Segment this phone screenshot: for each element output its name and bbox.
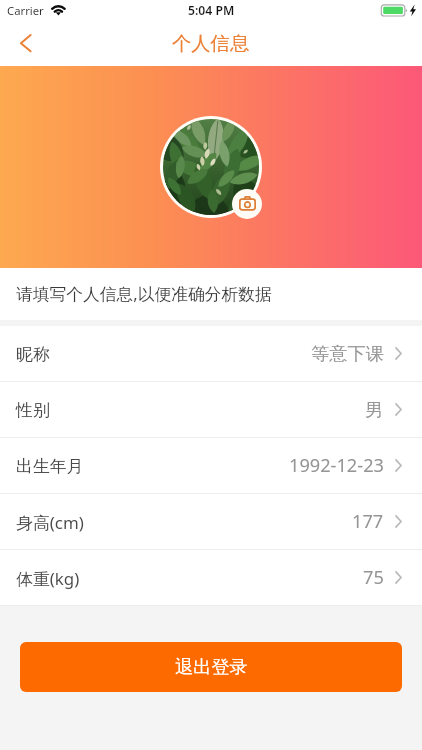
staticText: 75 xyxy=(363,565,384,590)
button[interactable]: 性别 xyxy=(0,382,422,437)
button[interactable]: 体重(kg) xyxy=(0,550,422,605)
button[interactable]: 退出登录 xyxy=(20,642,402,692)
staticText: 性别 xyxy=(16,400,50,421)
button[interactable]: Change profile photo xyxy=(232,189,262,219)
button[interactable]: 昵称 xyxy=(0,326,422,381)
button[interactable]: 出生年月 xyxy=(0,438,422,493)
staticText: 出生年月 xyxy=(16,456,84,477)
staticText: 1992-12-23 xyxy=(289,453,384,478)
staticText: 等意下课 xyxy=(311,342,384,365)
staticText: 177 xyxy=(352,509,384,534)
button[interactable]: Back xyxy=(0,26,44,66)
staticText: 请填写个人信息,以便准确分析数据 xyxy=(16,282,272,305)
staticText: 身高(cm) xyxy=(16,511,84,534)
staticText: 个人信息 xyxy=(172,31,250,55)
staticText: Carrier xyxy=(7,3,44,18)
staticText: 体重(kg) xyxy=(16,567,80,590)
staticText: 男 xyxy=(365,398,384,421)
button[interactable]: 身高(cm) xyxy=(0,494,422,549)
staticText: 退出登录 xyxy=(175,655,248,678)
staticText: 昵称 xyxy=(16,344,50,365)
staticText: 5:04 PM xyxy=(188,2,235,19)
